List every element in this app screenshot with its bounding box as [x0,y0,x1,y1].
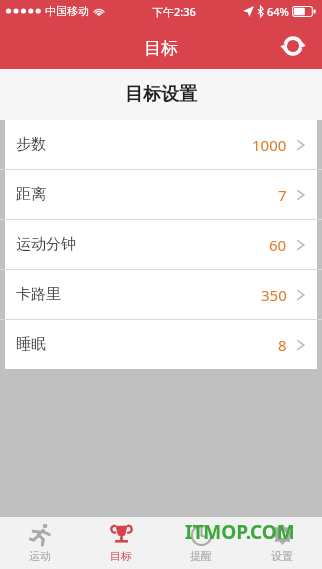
staticText: 卡路里 [16,285,61,304]
staticText: 8 [278,335,287,355]
staticText: 目标 [110,549,132,563]
staticText: 中国移动 [45,4,89,18]
button[interactable]: 提醒 [161,517,241,569]
staticText: 设置 [271,549,293,563]
button[interactable]: 运动分钟 [5,220,317,269]
staticText: 运动 [29,549,51,563]
staticText: 距离 [16,185,46,204]
staticText: 睡眠 [16,335,46,354]
staticText: 目标设置 [125,83,197,106]
button[interactable]: 卡路里 [5,270,317,319]
button[interactable]: 运动 [0,517,80,569]
button[interactable]: Sync [274,27,312,65]
staticText: 350 [261,285,287,305]
button[interactable]: 睡眠 [5,320,317,369]
button[interactable]: 目标 [81,517,161,569]
staticText: 60 [269,235,287,255]
staticText: 目标 [144,38,178,59]
staticText: ITMOP.COM [185,519,295,545]
staticText: 下午2:36 [152,4,196,19]
staticText: 7 [278,185,287,205]
button[interactable]: 步数 [5,120,317,169]
staticText: 64% [267,4,289,19]
staticText: 1000 [252,135,287,155]
button[interactable]: 距离 [5,170,317,219]
button[interactable]: 设置 [242,517,322,569]
staticText: 提醒 [190,549,212,563]
staticText: 步数 [16,135,46,154]
staticText: 运动分钟 [16,235,76,254]
